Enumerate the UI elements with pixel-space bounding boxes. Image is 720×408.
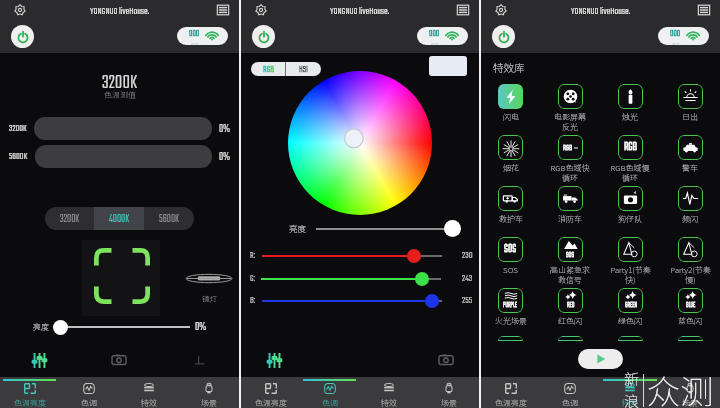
staticText: 3200K bbox=[9, 121, 27, 136]
button[interactable]: Party2(节奏 慢) bbox=[660, 234, 720, 285]
button[interactable]: RGB bbox=[600, 132, 660, 183]
button[interactable]: More effects bbox=[600, 336, 660, 341]
staticText: 5600K bbox=[9, 149, 28, 164]
button[interactable]: 频闪 bbox=[660, 183, 720, 234]
button[interactable]: RGB bbox=[540, 132, 600, 183]
button[interactable]: 场景 bbox=[419, 383, 479, 408]
staticText: 5600K bbox=[159, 211, 180, 227]
button[interactable]: 场景 bbox=[660, 383, 720, 408]
staticText: 000 bbox=[670, 27, 681, 41]
staticText: 亮度 bbox=[33, 321, 49, 333]
button[interactable]: Connection status bbox=[417, 27, 468, 45]
staticText: 救护车 bbox=[499, 213, 523, 225]
button[interactable]: 色温亮度 bbox=[241, 383, 300, 408]
button[interactable]: Menu bbox=[217, 4, 229, 16]
staticText: 色温亮度 bbox=[495, 397, 527, 408]
button[interactable]: 特效 bbox=[600, 383, 660, 408]
button[interactable]: 特效 bbox=[119, 383, 179, 408]
button[interactable]: HSI bbox=[286, 62, 321, 76]
button[interactable]: 日出 bbox=[660, 81, 720, 132]
button[interactable]: Play bbox=[578, 349, 623, 369]
staticText: 色调 bbox=[562, 397, 578, 408]
button[interactable]: Connection status bbox=[177, 27, 228, 45]
staticText: 亮度 bbox=[191, 41, 199, 45]
button[interactable]: RGB bbox=[251, 62, 285, 76]
button[interactable]: 电影屏幕 反光 bbox=[540, 81, 600, 132]
staticText: 255 bbox=[462, 292, 473, 308]
staticText: SOS bbox=[504, 241, 517, 258]
button[interactable]: Adjust bbox=[0, 346, 79, 374]
staticText: 特效 bbox=[381, 397, 397, 408]
staticText: G: bbox=[250, 271, 255, 285]
button[interactable]: Power bbox=[11, 25, 34, 48]
button[interactable]: 4000K bbox=[94, 207, 144, 230]
staticText: 243 bbox=[462, 270, 473, 286]
button[interactable]: Menu bbox=[457, 4, 469, 16]
button[interactable]: 烟花 bbox=[481, 132, 540, 183]
button[interactable]: Camera bbox=[79, 346, 159, 374]
staticText: 电影屏幕 反光 bbox=[554, 111, 586, 132]
button[interactable]: 色调 bbox=[59, 383, 119, 408]
button[interactable]: Menu bbox=[698, 4, 710, 16]
staticText: 色调 bbox=[81, 397, 97, 408]
staticText: 4000K bbox=[109, 211, 130, 227]
button[interactable]: More effects bbox=[540, 336, 600, 341]
staticText: 0% bbox=[219, 149, 230, 165]
button[interactable]: Settings bbox=[14, 4, 26, 16]
staticText: 特效 bbox=[141, 397, 157, 408]
button[interactable]: More effects bbox=[660, 336, 720, 341]
button[interactable] bbox=[35, 145, 212, 168]
button[interactable]: Party1(节奏 快) bbox=[600, 234, 660, 285]
staticText: 3200K bbox=[102, 68, 138, 98]
button[interactable]: 场景 bbox=[179, 383, 239, 408]
staticText: RGB色域慢 循环 bbox=[610, 162, 650, 183]
button[interactable]: 3200K bbox=[45, 207, 94, 230]
button[interactable]: 5600K bbox=[144, 207, 194, 230]
button[interactable]: Level bbox=[159, 346, 239, 374]
button[interactable]: SOS bbox=[540, 234, 600, 285]
button[interactable]: 狗仔队 bbox=[600, 183, 660, 234]
button[interactable]: RED bbox=[540, 285, 600, 336]
staticText: 警车 bbox=[682, 162, 698, 174]
button[interactable]: Adjust bbox=[241, 346, 307, 374]
staticText: 特效库 bbox=[493, 60, 525, 75]
staticText: 亮度 bbox=[289, 222, 307, 234]
staticText: 镜灯 bbox=[202, 293, 217, 304]
button[interactable]: Settings bbox=[255, 4, 267, 16]
button[interactable]: SOS bbox=[481, 234, 540, 285]
button[interactable]: Power bbox=[492, 25, 515, 48]
button[interactable]: 消防车 bbox=[540, 183, 600, 234]
staticText: 色调 bbox=[322, 397, 338, 408]
button[interactable]: 警车 bbox=[660, 132, 720, 183]
staticText: 亮度 bbox=[672, 41, 680, 45]
staticText: B: bbox=[250, 293, 256, 307]
button[interactable]: Camera bbox=[413, 346, 479, 374]
button[interactable]: 特效 bbox=[359, 383, 419, 408]
button[interactable]: Current colour bbox=[429, 56, 467, 76]
staticText: HSI bbox=[299, 62, 309, 76]
button[interactable]: Settings bbox=[495, 4, 507, 16]
button[interactable]: BLUE bbox=[660, 285, 720, 336]
button[interactable]: PURPLE bbox=[481, 285, 540, 336]
button[interactable]: More effects bbox=[481, 336, 540, 341]
button[interactable]: 色调 bbox=[540, 383, 600, 408]
button[interactable]: Power bbox=[252, 25, 275, 48]
button[interactable]: 闪电 bbox=[481, 81, 540, 132]
button[interactable]: GREEN bbox=[600, 285, 660, 336]
staticText: Party1(节奏 快) bbox=[610, 264, 651, 285]
staticText: 3200K bbox=[60, 211, 80, 227]
staticText: YONGNUO liveHouse. bbox=[90, 3, 150, 19]
staticText: 场景 bbox=[441, 397, 457, 408]
staticText: SOS bbox=[503, 264, 518, 276]
button[interactable] bbox=[34, 117, 212, 140]
staticText: BLUE bbox=[686, 300, 696, 310]
staticText: 烛光 bbox=[622, 111, 638, 123]
staticText: 色温亮度 bbox=[255, 397, 287, 408]
staticText: SOS bbox=[566, 249, 575, 260]
button[interactable]: Connection status bbox=[658, 27, 709, 45]
button[interactable]: 烛光 bbox=[600, 81, 660, 132]
button[interactable]: 色温亮度 bbox=[0, 383, 59, 408]
button[interactable]: 救护车 bbox=[481, 183, 540, 234]
button[interactable]: 色温亮度 bbox=[481, 383, 540, 408]
button[interactable]: 色调 bbox=[300, 383, 359, 408]
